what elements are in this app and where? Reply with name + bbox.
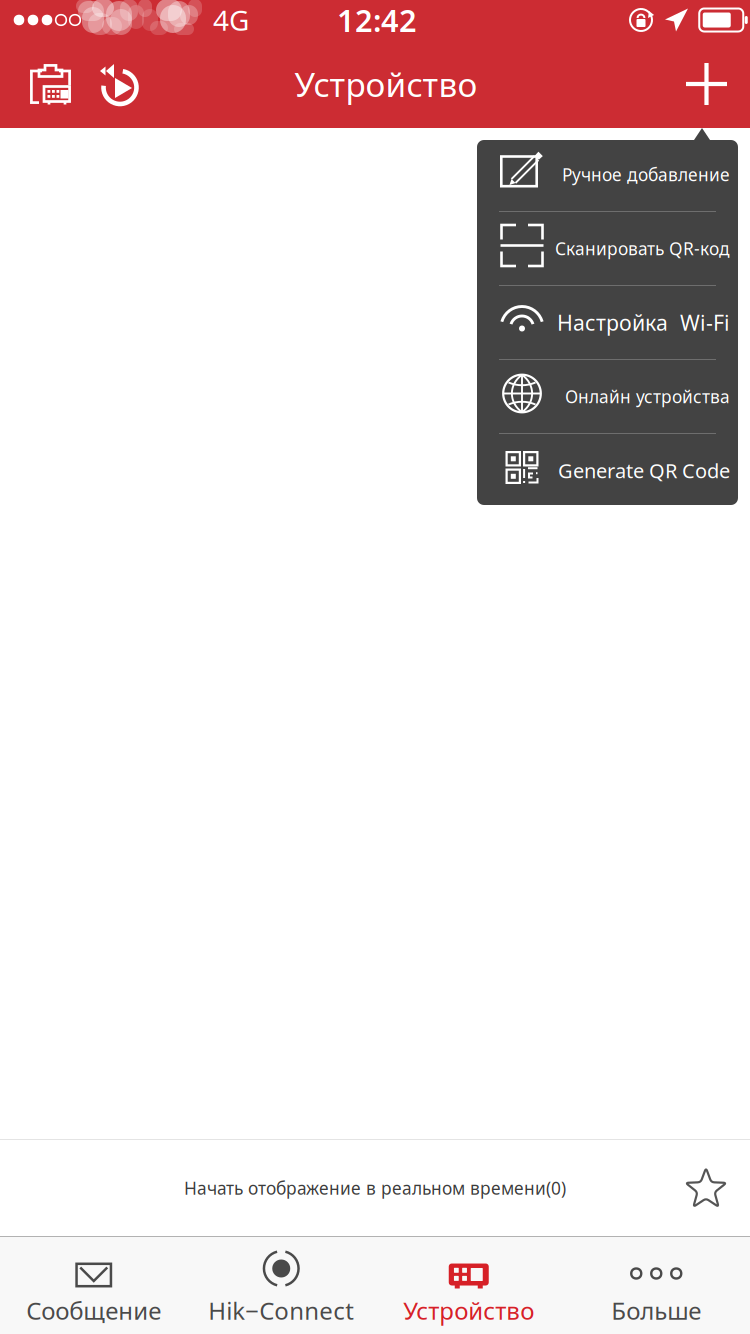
staticText: 4G [213, 1, 249, 39]
button[interactable]: Устройство [375, 1237, 562, 1334]
staticText: Начать отображение в реальном времени(0) [184, 1176, 566, 1199]
button[interactable]: Ручное добавление [477, 138, 738, 211]
staticText: 12:42 [337, 0, 417, 40]
button[interactable]: Playback [80, 54, 149, 114]
button[interactable]: Больше [562, 1237, 750, 1334]
staticText: Онлайн устройства [565, 385, 730, 408]
button[interactable]: Сообщение [0, 1237, 187, 1334]
staticText: Generate QR Code [558, 457, 730, 484]
staticText: Больше [611, 1294, 701, 1326]
staticText: Сканировать QR-код [555, 237, 730, 260]
staticText: Hik−Connect [208, 1294, 354, 1326]
button[interactable]: Favorites [684, 1164, 750, 1211]
button[interactable]: Начать отображение в реальном времени(0) [0, 1176, 750, 1199]
button[interactable]: Device list [21, 55, 80, 113]
staticText: Устройство [403, 1294, 534, 1326]
button[interactable]: Generate QR Code [477, 434, 738, 507]
staticText: Настройка Wi-Fi [557, 308, 730, 337]
staticText: Сообщение [26, 1294, 161, 1326]
button[interactable]: Add device [679, 55, 734, 113]
staticText: Устройство [294, 62, 477, 106]
button[interactable]: Сканировать QR-код [477, 212, 738, 285]
button[interactable]: Онлайн устройства [477, 360, 738, 433]
staticText: Ручное добавление [562, 163, 730, 186]
button[interactable]: Настройка Wi-Fi [477, 286, 738, 359]
button[interactable]: Hik−Connect [187, 1237, 375, 1334]
